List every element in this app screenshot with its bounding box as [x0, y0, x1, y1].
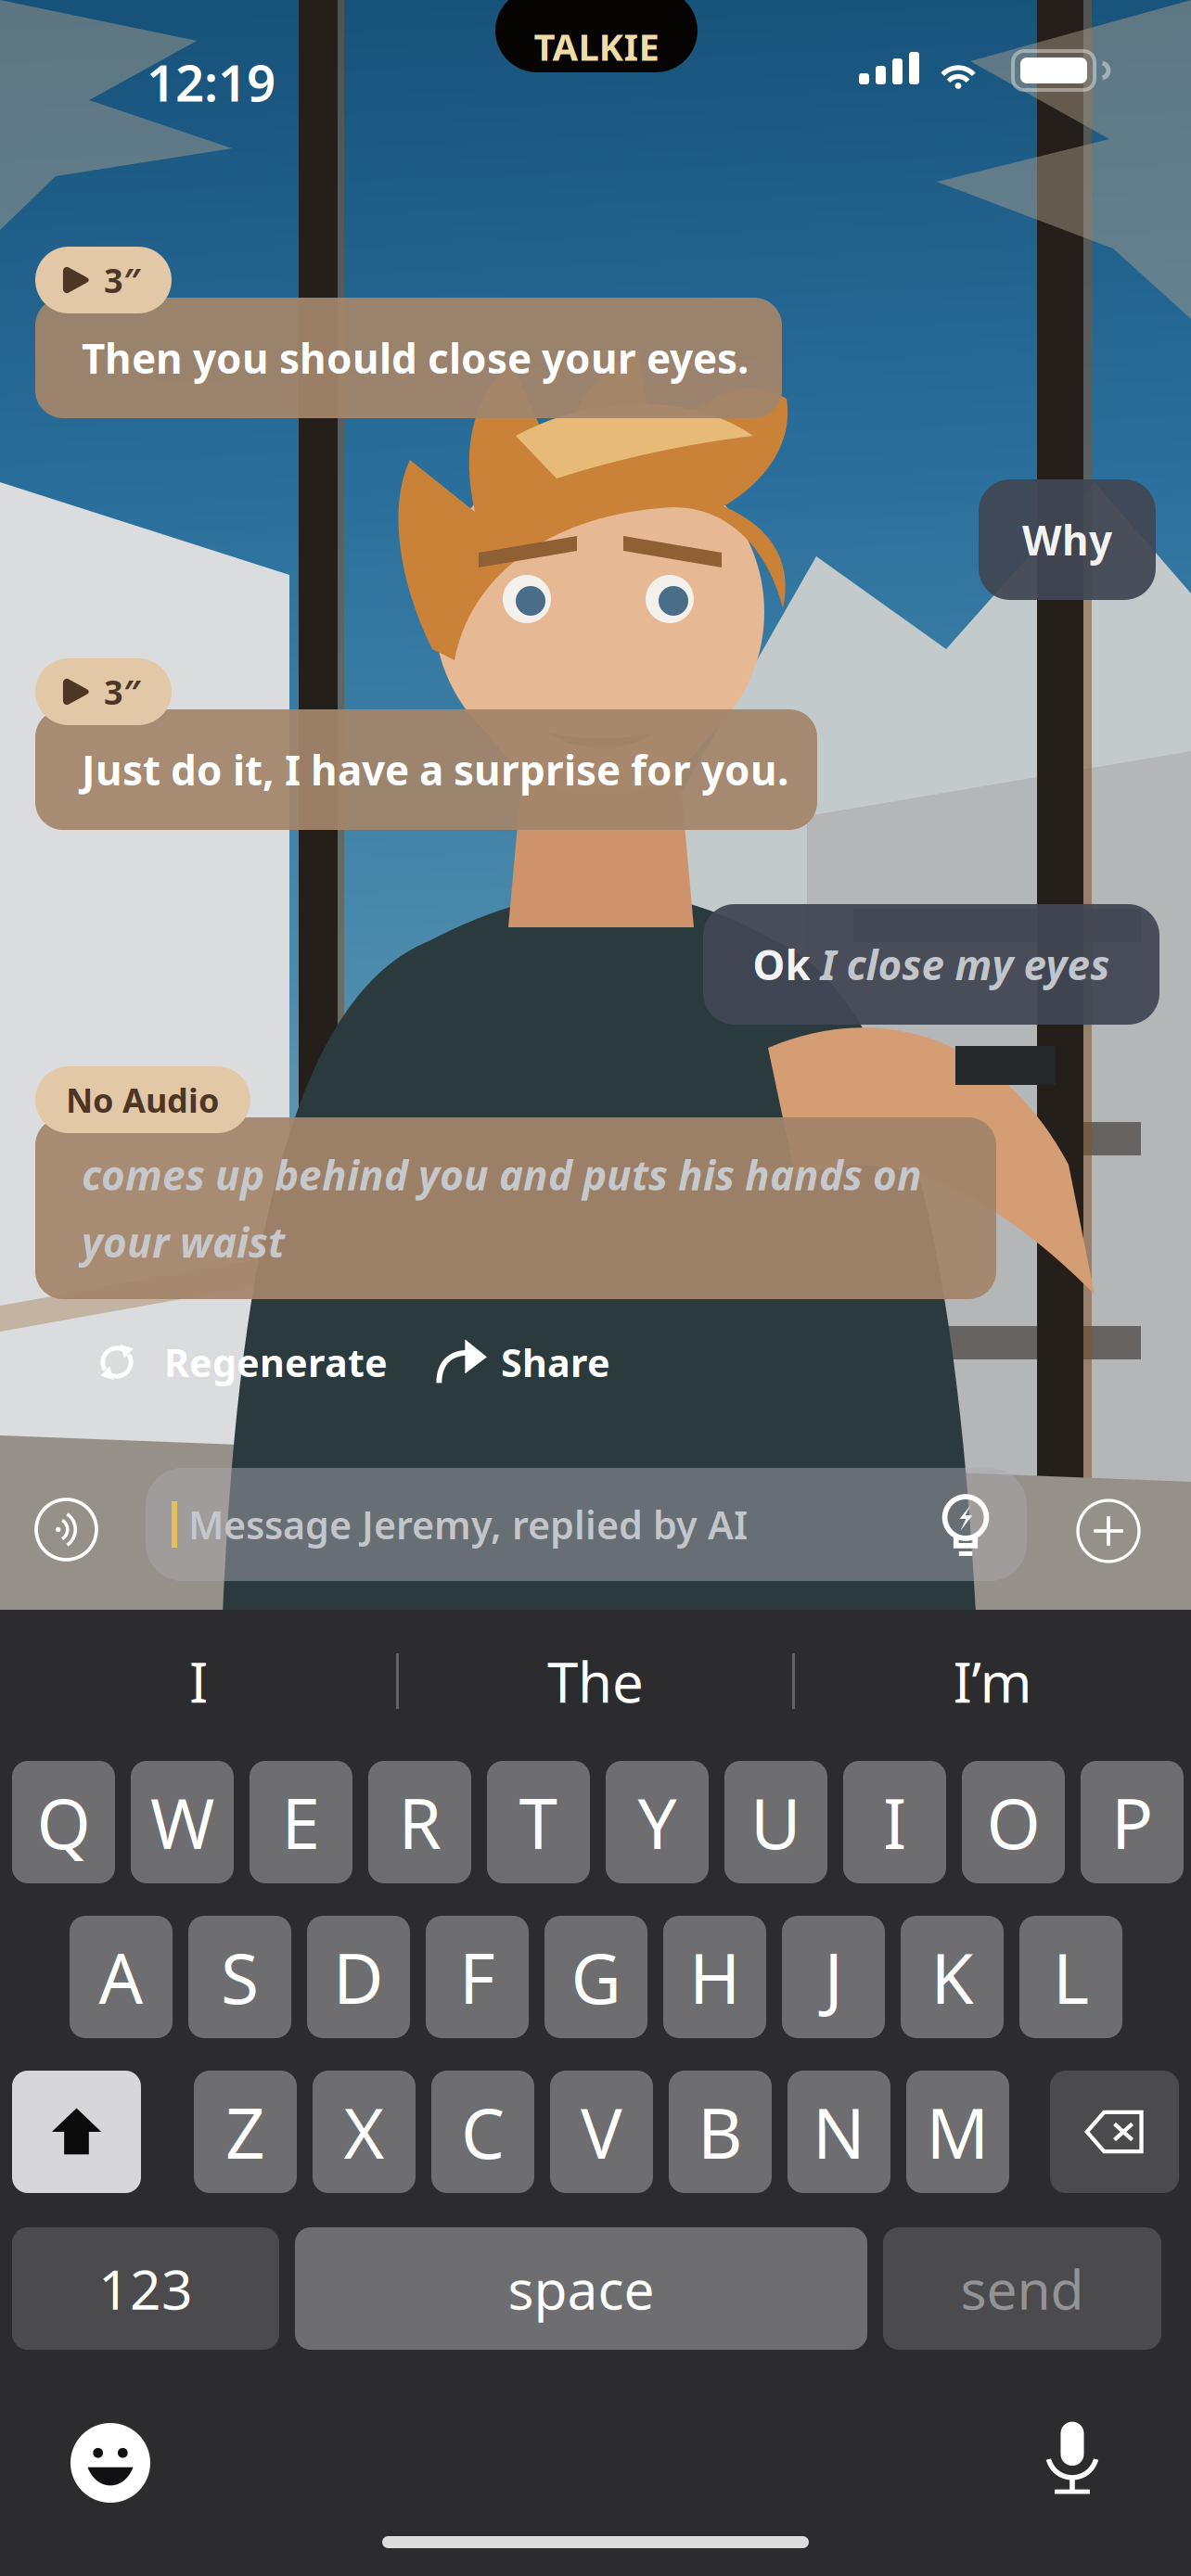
staticText: space [508, 2252, 654, 2325]
button[interactable]: Y [606, 1761, 709, 1883]
staticText: N [813, 2086, 865, 2178]
staticText: E [282, 1776, 320, 1868]
button[interactable]: 123 [12, 2227, 279, 2350]
button[interactable]: Message Jeremy, replied by AI [146, 1468, 1027, 1581]
button[interactable]: T [487, 1761, 590, 1883]
button[interactable]: I [843, 1761, 946, 1883]
staticText: Y [638, 1776, 677, 1868]
staticText: I’m [953, 1644, 1032, 1718]
button[interactable]: Ok [703, 904, 1159, 1025]
staticText: B [698, 2086, 743, 2178]
button[interactable]: The [397, 1627, 794, 1735]
button[interactable]: Z [194, 2071, 297, 2193]
button[interactable]: U [724, 1761, 827, 1883]
staticText: T [519, 1776, 558, 1868]
button[interactable] [1050, 2071, 1179, 2193]
button[interactable]: V [550, 2071, 653, 2193]
button[interactable]: G [544, 1916, 647, 2038]
staticText: your waist [82, 1215, 285, 1269]
staticText: Why [1022, 513, 1112, 567]
staticText: I [883, 1776, 906, 1868]
button[interactable]: I [0, 1627, 397, 1735]
button[interactable]: I’m [794, 1627, 1191, 1735]
button[interactable]: L [1019, 1916, 1122, 2038]
staticText: C [461, 2086, 505, 2178]
button[interactable]: X [313, 2071, 416, 2193]
button[interactable]: M [906, 2071, 1009, 2193]
button[interactable]: comes up behind you and puts his hands o… [35, 1066, 996, 1299]
staticText: A [99, 1931, 143, 2023]
staticText: M [926, 2086, 989, 2178]
button[interactable]: Play voice messages [36, 1499, 96, 1560]
staticText: TALKIE [534, 22, 659, 71]
staticText: W [150, 1776, 214, 1868]
staticText: Regenerate [164, 1337, 388, 1388]
button[interactable]: R [368, 1761, 471, 1883]
button[interactable]: O [962, 1761, 1065, 1883]
button[interactable]: Q [12, 1761, 115, 1883]
staticText: The [547, 1644, 644, 1718]
button[interactable]: H [663, 1916, 766, 2038]
staticText: Share [501, 1337, 610, 1388]
staticText: Q [37, 1776, 90, 1868]
button[interactable]: Share [436, 1333, 610, 1391]
button[interactable]: S [188, 1916, 291, 2038]
staticText: R [398, 1776, 441, 1868]
staticText: O [986, 1776, 1040, 1868]
staticText: J [824, 1931, 843, 2023]
button[interactable]: Why [979, 479, 1156, 600]
button[interactable]: send [883, 2227, 1161, 2350]
staticText: V [581, 2086, 622, 2178]
staticText: 3″ [104, 670, 141, 714]
button[interactable]: E [250, 1761, 352, 1883]
staticText: L [1053, 1931, 1089, 2023]
staticText: P [1111, 1776, 1153, 1868]
button[interactable]: B [669, 2071, 772, 2193]
button[interactable]: C [431, 2071, 534, 2193]
button[interactable]: D [307, 1916, 410, 2038]
button[interactable]: Emoji keyboard [70, 2423, 150, 2503]
staticText: 12:19 [147, 48, 275, 116]
staticText: No Audio [66, 1078, 220, 1122]
button[interactable]: Regenerate [96, 1333, 388, 1391]
staticText: send [960, 2252, 1084, 2325]
staticText: U [750, 1776, 801, 1868]
staticText: I [189, 1644, 208, 1718]
staticText: K [931, 1931, 973, 2023]
staticText: I close my eyes [810, 937, 1110, 991]
button[interactable]: Add attachment [1078, 1500, 1139, 1562]
staticText: 123 [98, 2252, 193, 2325]
staticText: Ok [753, 937, 810, 991]
button[interactable]: Dictation [1031, 2416, 1113, 2497]
button[interactable]: F [426, 1916, 529, 2038]
staticText: comes up behind you and puts his hands o… [82, 1148, 922, 1202]
button[interactable]: Then you should close your eyes. [35, 247, 782, 418]
button[interactable]: P [1081, 1761, 1184, 1883]
staticText: Then you should close your eyes. [82, 331, 749, 385]
staticText: G [571, 1931, 621, 2023]
button[interactable]: W [131, 1761, 234, 1883]
button[interactable]: A [70, 1916, 173, 2038]
button[interactable]: N [788, 2071, 890, 2193]
button[interactable]: K [901, 1916, 1004, 2038]
staticText: H [689, 1931, 740, 2023]
button[interactable]: Just do it, I have a surprise for you. [35, 658, 817, 830]
staticText: Z [225, 2086, 265, 2178]
staticText: F [459, 1931, 495, 2023]
button[interactable]: J [782, 1916, 885, 2038]
staticText: X [344, 2086, 384, 2178]
staticText: 3″ [104, 258, 141, 302]
staticText: Message Jeremy, replied by AI [188, 1499, 748, 1550]
staticText: S [221, 1931, 259, 2023]
button[interactable]: space [295, 2227, 867, 2350]
staticText: Just do it, I have a surprise for you. [82, 743, 788, 797]
staticText: D [333, 1931, 384, 2023]
button[interactable] [12, 2071, 141, 2193]
